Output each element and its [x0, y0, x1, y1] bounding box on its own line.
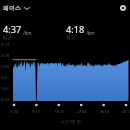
staticText: 4:28: [1, 53, 9, 58]
staticText: 페이스: [3, 4, 21, 12]
staticText: 평균: [3, 35, 12, 41]
staticText: 36:58: [99, 109, 110, 114]
staticText: 46:12: [121, 109, 130, 114]
staticText: 6:03: [1, 97, 9, 102]
staticText: 5:21: [1, 75, 9, 80]
staticText: 0:00: [10, 109, 18, 114]
staticText: 5:00: [1, 64, 9, 69]
staticText: /km: [85, 30, 95, 36]
staticText: 9:15: [32, 109, 40, 114]
staticText: 4:37: [3, 23, 22, 36]
button[interactable]: 페이스: [3, 2, 33, 14]
staticText: 5:42: [1, 86, 9, 91]
staticText: 4:18: [66, 23, 85, 36]
staticText: 27:44: [76, 109, 87, 114]
staticText: 최고: [66, 35, 75, 41]
button[interactable]: Options: [120, 5, 126, 11]
staticText: 4:19: [1, 42, 9, 47]
staticText: 18:29: [54, 109, 65, 114]
staticText: /km: [22, 30, 32, 36]
staticText: 시간 (분:초): [60, 119, 82, 125]
